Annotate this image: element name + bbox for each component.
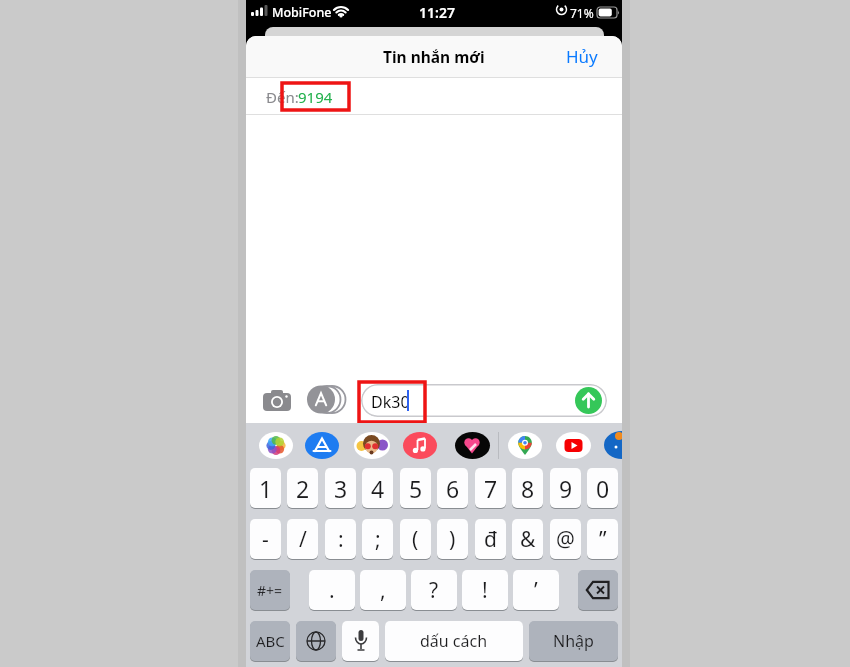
staticText: Tin nhắn mới (383, 46, 485, 67)
staticText: 9 (559, 473, 573, 504)
button[interactable]: ; (362, 519, 393, 559)
staticText: 3 (334, 473, 348, 504)
button[interactable]: 8 (512, 468, 543, 508)
button[interactable] (455, 432, 490, 459)
staticText: ? (429, 576, 439, 605)
button[interactable]: dấu cách (385, 621, 523, 661)
button[interactable] (354, 432, 390, 459)
button[interactable]: ( (400, 519, 431, 559)
button[interactable]: 5 (400, 468, 431, 508)
staticText: MobiFone (272, 4, 332, 21)
staticText: ! (482, 576, 488, 605)
button[interactable] (604, 431, 622, 459)
button[interactable]: #+= (250, 570, 290, 610)
button[interactable]: 0 (587, 468, 618, 508)
button[interactable]: 9 (550, 468, 581, 508)
button[interactable]: 2 (287, 468, 318, 508)
button[interactable] (342, 621, 379, 661)
staticText: 5 (409, 473, 423, 504)
button[interactable]: Dk30 (361, 384, 607, 417)
button[interactable]: @ (550, 519, 581, 559)
button[interactable]: . (309, 570, 355, 610)
button[interactable]: ’ (513, 570, 559, 610)
button[interactable]: : (325, 519, 356, 559)
staticText: 8 (521, 473, 535, 504)
staticText: Hủy (566, 45, 598, 68)
staticText: 6 (446, 473, 460, 504)
staticText: ) (449, 525, 456, 554)
staticText: : (338, 525, 344, 554)
button[interactable]: Đến: (246, 78, 622, 114)
button[interactable] (508, 432, 542, 459)
staticText: 2 (296, 473, 310, 504)
button[interactable]: & (512, 519, 543, 559)
staticText: ABC (256, 631, 285, 651)
button[interactable]: - (250, 519, 281, 559)
staticText: dấu cách (420, 630, 488, 652)
button[interactable]: Nhập (529, 621, 618, 661)
staticText: - (262, 525, 269, 554)
staticText: 4 (371, 473, 385, 504)
button[interactable] (578, 570, 618, 610)
button[interactable] (305, 432, 339, 459)
button[interactable] (307, 385, 347, 414)
staticText: 9194 (298, 87, 333, 107)
button[interactable] (296, 621, 336, 661)
staticText: 71% (570, 5, 594, 21)
button[interactable] (259, 432, 293, 459)
button[interactable] (263, 390, 291, 411)
button[interactable]: ? (411, 570, 457, 610)
staticText: Đến: (266, 87, 299, 107)
staticText: 1 (259, 473, 273, 504)
staticText: Dk30 (371, 391, 410, 413)
button[interactable]: ABC (250, 621, 290, 661)
button[interactable]: / (287, 519, 318, 559)
staticText: ; (375, 525, 381, 554)
button[interactable]: ! (462, 570, 508, 610)
staticText: & (520, 525, 536, 554)
staticText: @ (556, 525, 575, 554)
button[interactable]: 4 (362, 468, 393, 508)
staticText: / (299, 525, 307, 554)
button[interactable]: 1 (250, 468, 281, 508)
staticText: #+= (257, 581, 283, 600)
staticText: . (329, 576, 335, 605)
button[interactable]: 6 (437, 468, 468, 508)
button[interactable] (556, 432, 591, 459)
staticText: 0 (596, 473, 610, 504)
button[interactable]: ” (587, 519, 618, 559)
staticText: ’ (534, 576, 538, 605)
staticText: ” (599, 525, 607, 554)
button[interactable] (575, 387, 602, 414)
staticText: 7 (484, 473, 498, 504)
staticText: , (380, 576, 386, 605)
staticText: đ (484, 525, 497, 554)
button[interactable]: đ (475, 519, 506, 559)
button[interactable]: , (360, 570, 406, 610)
staticText: 11:27 (419, 3, 455, 22)
button[interactable]: Hủy (566, 45, 598, 68)
button[interactable] (403, 432, 437, 459)
button[interactable]: 7 (475, 468, 506, 508)
button[interactable]: 3 (325, 468, 356, 508)
staticText: ( (412, 525, 419, 554)
button[interactable]: ) (437, 519, 468, 559)
staticText: Nhập (553, 630, 594, 652)
